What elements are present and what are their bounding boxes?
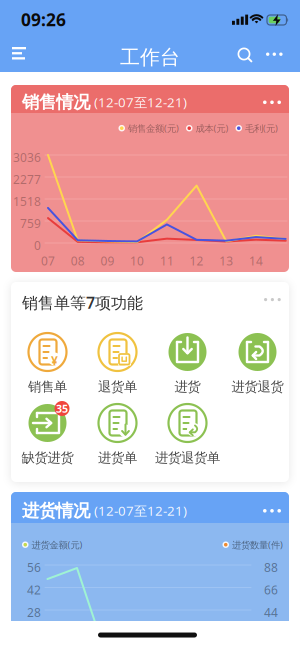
button[interactable]: 35	[12, 404, 82, 466]
staticText: 44	[264, 604, 278, 620]
button[interactable]: ¥	[12, 333, 82, 395]
button[interactable]	[11, 46, 27, 60]
staticText: 11	[160, 253, 174, 269]
staticText: 进货退货	[231, 378, 283, 395]
staticText: 08	[71, 253, 85, 269]
staticText: 进货退货单	[155, 449, 220, 466]
staticText: 10	[130, 253, 144, 269]
staticText: 毛利(元)	[245, 122, 278, 134]
staticText: 工作台	[120, 45, 180, 70]
button[interactable]	[263, 100, 281, 104]
staticText: 成本(元)	[195, 122, 228, 134]
staticText: 进货单	[98, 449, 137, 466]
button[interactable]: 进货单	[82, 404, 152, 466]
staticText: 3036	[13, 149, 41, 165]
staticText: 35	[56, 401, 68, 416]
staticText: 进货数量(件)	[232, 538, 283, 551]
staticText: 销售单等7项功能	[22, 292, 143, 313]
button[interactable]: 进货	[152, 333, 222, 395]
staticText: 缺货进货	[21, 449, 73, 466]
button[interactable]: 进货退货单	[152, 404, 222, 466]
staticText: 13	[219, 253, 233, 269]
staticText: 销售情况	[22, 91, 90, 113]
staticText: 进货情况	[22, 500, 90, 521]
staticText: ¥	[51, 353, 58, 368]
button[interactable]: 退货单	[82, 333, 152, 395]
staticText: (12-07至12-21)	[94, 502, 187, 519]
staticText: 56	[27, 559, 41, 575]
staticText: 09:26	[21, 8, 66, 31]
staticText: 进货	[174, 378, 200, 395]
staticText: 42	[27, 582, 41, 598]
staticText: 759	[20, 215, 41, 231]
staticText: 2277	[13, 171, 41, 187]
staticText: 09	[100, 253, 114, 269]
staticText: 14	[249, 253, 263, 269]
staticText: 销售单	[28, 378, 67, 395]
button[interactable]	[263, 509, 281, 513]
staticText: 88	[264, 559, 278, 575]
button[interactable]	[264, 298, 281, 301]
staticText: 12	[190, 253, 204, 269]
staticText: 销售金额(元)	[128, 122, 179, 134]
staticText: 0	[34, 237, 41, 253]
staticText: 1518	[13, 193, 41, 209]
staticText: 28	[27, 604, 41, 620]
button[interactable]: 进货退货	[222, 333, 292, 395]
staticText: (12-07至12-21)	[94, 93, 187, 111]
staticText: 退货单	[98, 378, 137, 395]
staticText: 进货金额(元)	[31, 538, 82, 551]
button[interactable]	[237, 47, 253, 63]
button[interactable]	[266, 52, 283, 56]
staticText: 66	[264, 582, 278, 598]
staticText: 07	[41, 253, 55, 269]
